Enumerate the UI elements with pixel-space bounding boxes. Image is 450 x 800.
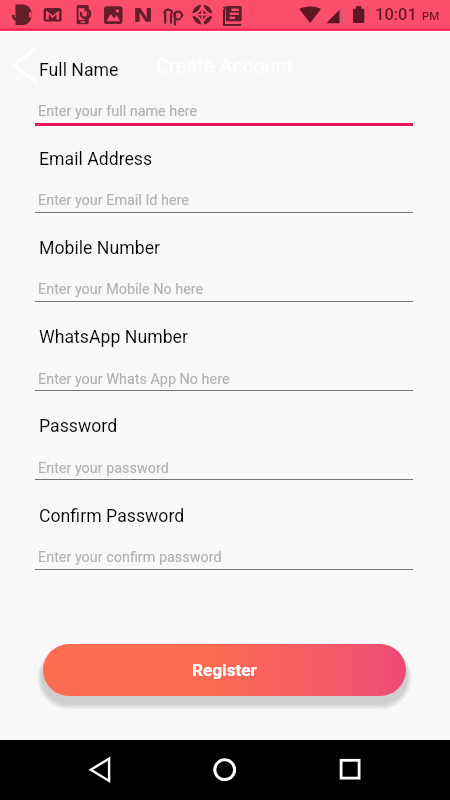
staticText: Mobile Number bbox=[39, 238, 161, 259]
staticText: Register bbox=[192, 660, 257, 680]
staticText: Password bbox=[39, 416, 118, 437]
staticText: Enter your password bbox=[38, 460, 169, 477]
staticText: Confirm Password bbox=[39, 506, 185, 527]
staticText: Enter your Mobile No here bbox=[38, 281, 204, 298]
staticText: WhatsApp Number bbox=[39, 327, 188, 348]
staticText: 10:01 bbox=[375, 5, 417, 24]
staticText: Enter your Email Id here bbox=[38, 192, 189, 209]
staticText: Enter your confirm password bbox=[38, 549, 222, 566]
staticText: PM bbox=[422, 9, 440, 22]
staticText: Enter your full name here bbox=[38, 103, 198, 120]
staticText: Full Name bbox=[39, 60, 119, 81]
staticText: Email Address bbox=[39, 149, 153, 170]
button[interactable]: Register bbox=[43, 644, 406, 696]
staticText: Enter your Whats App No here bbox=[38, 371, 230, 388]
button[interactable]: Back bbox=[6, 42, 46, 90]
